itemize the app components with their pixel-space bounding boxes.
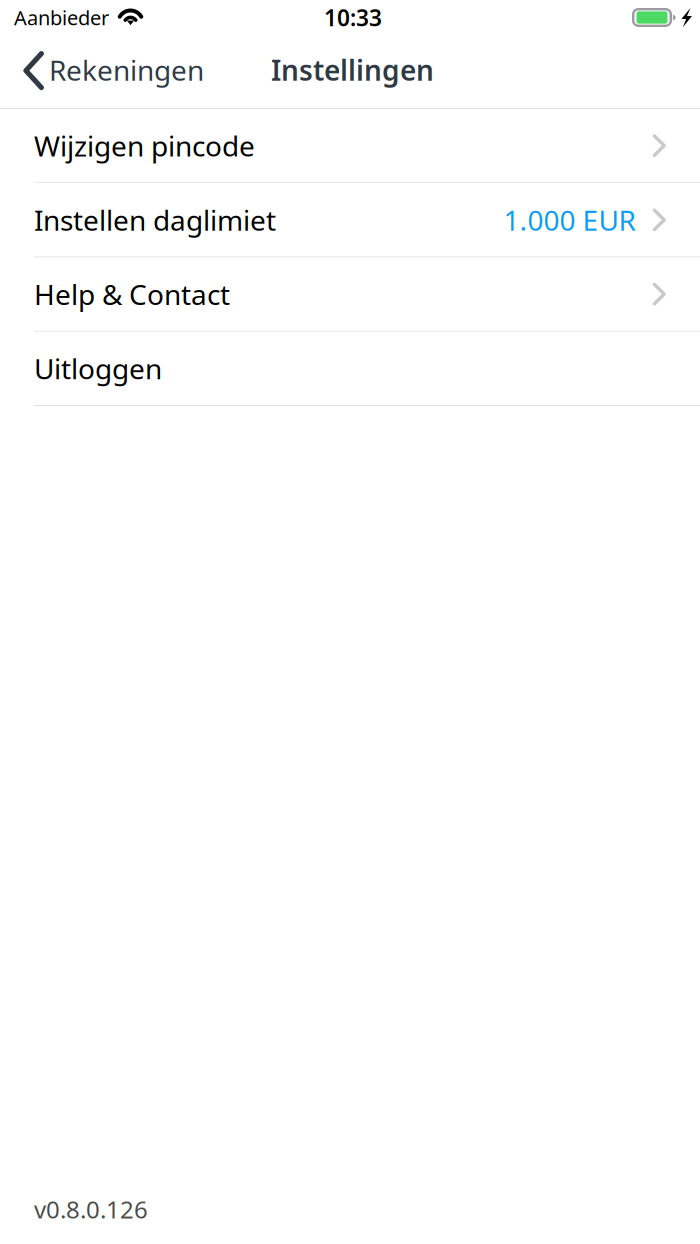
- button[interactable]: Rekeningen: [0, 40, 218, 108]
- staticText: Instellen daglimiet: [34, 201, 276, 238]
- staticText: 1.000 EUR: [504, 201, 636, 238]
- button[interactable]: Help & Contact: [0, 257, 700, 331]
- staticText: Instellingen: [271, 51, 434, 89]
- staticText: Rekeningen: [49, 51, 204, 89]
- staticText: v0.8.0.126: [34, 1193, 148, 1225]
- staticText: Uitloggen: [34, 350, 162, 387]
- button[interactable]: Uitloggen: [0, 332, 700, 405]
- staticText: Help & Contact: [34, 275, 230, 313]
- staticText: Wijzigen pincode: [34, 127, 255, 164]
- button[interactable]: Instellen daglimiet: [0, 183, 700, 256]
- staticText: Aanbieder: [14, 4, 109, 31]
- button[interactable]: Wijzigen pincode: [0, 109, 700, 182]
- staticText: 10:33: [324, 2, 382, 32]
